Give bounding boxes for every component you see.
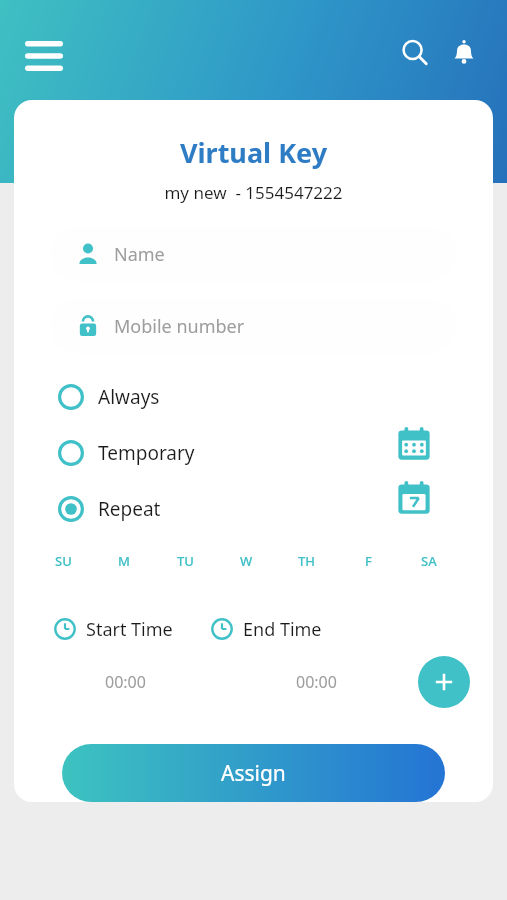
button[interactable]: End Time: [211, 614, 322, 644]
button[interactable]: Name: [50, 226, 457, 282]
button[interactable]: SA: [402, 534, 456, 588]
staticText: TU: [177, 552, 194, 570]
button[interactable]: Pick date range: [392, 422, 436, 466]
staticText: End Time: [243, 617, 322, 642]
staticText: Assign: [221, 759, 286, 788]
staticText: SA: [421, 552, 437, 570]
button[interactable]: Assign: [62, 744, 445, 802]
staticText: my new - 1554547222: [14, 181, 493, 204]
button[interactable]: Mobile number: [50, 298, 457, 354]
staticText: Temporary: [98, 440, 195, 466]
button[interactable]: Add time slot: [418, 656, 470, 708]
button[interactable]: Temporary: [58, 436, 318, 470]
staticText: W: [240, 552, 253, 570]
button[interactable]: 00:00: [50, 658, 201, 706]
button[interactable]: 00:00: [241, 658, 392, 706]
button[interactable]: Notifications: [441, 30, 487, 76]
button[interactable]: TU: [158, 534, 212, 588]
button[interactable]: W: [219, 534, 273, 588]
staticText: SU: [55, 552, 72, 570]
button[interactable]: SU: [36, 534, 90, 588]
staticText: F: [365, 552, 372, 570]
staticText: 00:00: [105, 671, 146, 693]
staticText: Always: [98, 384, 160, 410]
staticText: Virtual Key: [14, 134, 493, 171]
button[interactable]: Repeat: [58, 492, 318, 526]
button[interactable]: Start Time: [54, 614, 173, 644]
button[interactable]: Pick repeat day: [392, 476, 436, 520]
staticText: Mobile number: [114, 314, 245, 339]
button[interactable]: TH: [280, 534, 334, 588]
staticText: TH: [298, 552, 316, 570]
staticText: Start Time: [86, 617, 173, 642]
button[interactable]: Menu: [18, 30, 70, 82]
staticText: Repeat: [98, 496, 161, 522]
staticText: M: [118, 552, 130, 570]
button[interactable]: Search: [392, 30, 438, 76]
staticText: Name: [114, 242, 165, 267]
button[interactable]: F: [341, 534, 395, 588]
staticText: 00:00: [296, 671, 337, 693]
button[interactable]: M: [97, 534, 151, 588]
button[interactable]: Always: [58, 380, 318, 414]
